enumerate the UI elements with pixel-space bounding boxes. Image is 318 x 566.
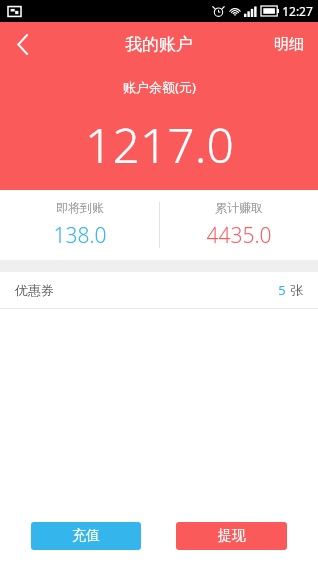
staticText: 4435.0 [206, 221, 272, 250]
staticText: 张 [290, 282, 303, 298]
button[interactable]: 提现 [176, 522, 287, 550]
button[interactable]: 累计赚取 [159, 190, 318, 260]
staticText: 优惠券 [15, 282, 54, 298]
staticText: 累计赚取 [215, 200, 263, 215]
staticText: 138.0 [53, 221, 107, 250]
staticText: 明细 [274, 35, 304, 54]
staticText: 我的账户 [125, 34, 193, 55]
staticText: 提现 [218, 527, 246, 545]
staticText: 账户余额(元) [123, 78, 196, 96]
button[interactable]: Back [0, 22, 44, 66]
button[interactable]: 即将到账 [0, 190, 159, 260]
staticText: 充值 [72, 527, 100, 545]
staticText: 12:27 [282, 3, 313, 19]
staticText: 5 [278, 281, 286, 299]
button[interactable]: 充值 [31, 522, 141, 550]
staticText: 即将到账 [56, 200, 104, 215]
staticText: 1217.0 [85, 112, 234, 177]
button[interactable]: 优惠券 [0, 272, 318, 308]
button[interactable]: 明细 [260, 22, 318, 66]
